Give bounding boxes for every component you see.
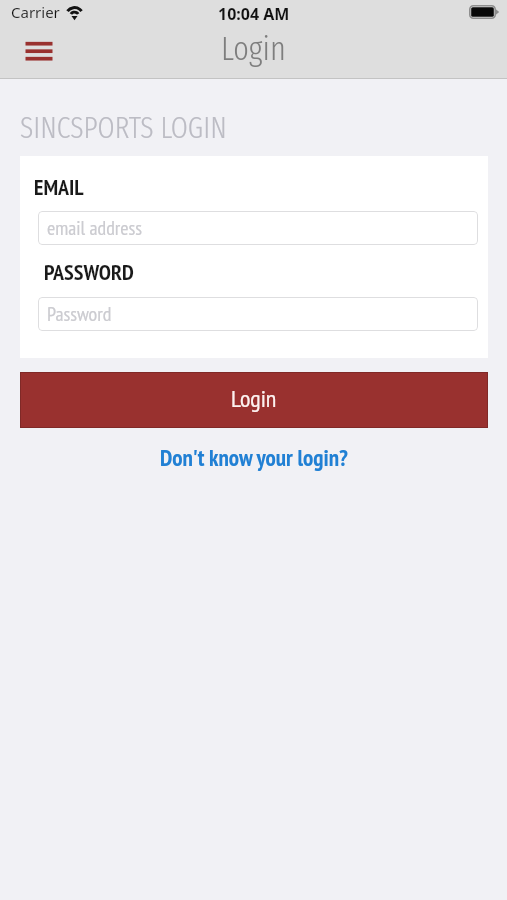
staticText: PASSWORD <box>44 258 134 286</box>
staticText: Login <box>221 29 286 69</box>
staticText: EMAIL <box>34 173 84 201</box>
staticText: SINCSPORTS LOGIN <box>20 110 227 146</box>
staticText: Login <box>231 383 277 414</box>
button[interactable]: Password <box>38 297 478 331</box>
staticText: Carrier <box>11 2 60 22</box>
staticText: Password <box>47 301 112 327</box>
button[interactable]: Login <box>20 372 488 428</box>
button[interactable]: Open navigation menu <box>16 30 62 70</box>
staticText: 10:04 AM <box>218 3 290 25</box>
staticText: email address <box>47 215 143 241</box>
button[interactable]: Don't know your login? <box>154 441 354 475</box>
button[interactable]: email address <box>38 211 478 245</box>
